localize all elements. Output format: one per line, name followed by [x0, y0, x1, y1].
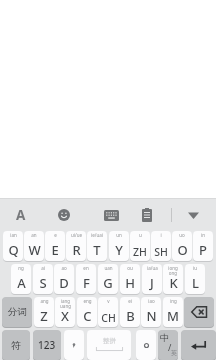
- button[interactable]: un: [109, 231, 129, 261]
- staticText: ian: [10, 232, 17, 238]
- staticText: v: [107, 298, 110, 304]
- staticText: ui/ue: [71, 232, 82, 238]
- button[interactable]: 符: [2, 330, 30, 360]
- button[interactable]: iong ong: [163, 264, 183, 294]
- staticText: ng: [18, 265, 24, 271]
- button[interactable]: ng: [11, 264, 31, 294]
- button[interactable]: [64, 330, 84, 360]
- staticText: J: [150, 274, 154, 292]
- staticText: H: [125, 274, 135, 292]
- staticText: D: [59, 274, 69, 292]
- staticText: A: [17, 274, 26, 292]
- staticText: CH: [101, 311, 116, 325]
- button[interactable]: ui/ue: [66, 231, 86, 261]
- staticText: O: [177, 241, 188, 259]
- staticText: uo: [179, 232, 185, 238]
- staticText: B: [126, 307, 135, 325]
- staticText: P: [199, 241, 207, 259]
- staticText: iong ong: [168, 265, 178, 276]
- button[interactable]: uan: [98, 264, 118, 294]
- staticText: C: [83, 307, 92, 325]
- button[interactable]: iang uang: [55, 297, 75, 327]
- button[interactable]: [138, 199, 156, 231]
- staticText: Y: [115, 241, 123, 259]
- staticText: in: [201, 232, 205, 238]
- button[interactable]: ai: [33, 264, 53, 294]
- button[interactable]: [184, 297, 214, 327]
- button[interactable]: e: [45, 231, 65, 261]
- staticText: N: [146, 307, 157, 325]
- button[interactable]: en: [76, 264, 96, 294]
- staticText: E: [51, 241, 59, 259]
- staticText: ao: [61, 265, 67, 271]
- button[interactable]: ang: [34, 297, 54, 327]
- button[interactable]: 整拼: [87, 330, 131, 360]
- button[interactable]: ia/ua: [142, 264, 162, 294]
- staticText: ou: [127, 265, 133, 271]
- staticText: ie/uai: [91, 232, 103, 238]
- button[interactable]: ing: [163, 297, 183, 327]
- staticText: T: [93, 241, 101, 259]
- staticText: K: [169, 274, 178, 292]
- staticText: S: [39, 274, 47, 292]
- button[interactable]: iao: [141, 297, 161, 327]
- staticText: iao: [148, 298, 155, 304]
- staticText: R: [72, 241, 81, 259]
- staticText: eng: [83, 298, 92, 304]
- button[interactable]: ie/uai: [87, 231, 107, 261]
- button[interactable]: [136, 330, 156, 360]
- staticText: ia/ua: [147, 265, 158, 271]
- button[interactable]: A: [12, 199, 30, 231]
- staticText: 分词: [8, 306, 27, 318]
- staticText: /: [168, 341, 172, 353]
- staticText: G: [103, 274, 113, 292]
- button[interactable]: [181, 330, 216, 360]
- button[interactable]: in: [193, 231, 213, 261]
- staticText: e: [54, 232, 57, 238]
- staticText: Q: [8, 241, 19, 259]
- staticText: W: [28, 241, 41, 259]
- staticText: Z: [40, 307, 48, 325]
- staticText: iang uang: [60, 298, 71, 309]
- staticText: X: [61, 307, 69, 325]
- staticText: 符: [11, 339, 21, 352]
- button[interactable]: ei: [120, 297, 140, 327]
- staticText: SH: [154, 245, 168, 259]
- button[interactable]: 123: [33, 330, 61, 360]
- staticText: L: [192, 274, 199, 292]
- staticText: un: [116, 232, 122, 238]
- button[interactable]: 分词: [2, 297, 32, 327]
- staticText: ei: [128, 298, 132, 304]
- button[interactable]: ian: [3, 231, 23, 261]
- staticText: M: [167, 307, 179, 325]
- staticText: 123: [38, 338, 56, 352]
- button[interactable]: i: [151, 231, 171, 261]
- staticText: iu: [193, 265, 197, 271]
- button[interactable]: 中: [158, 330, 178, 360]
- staticText: u: [139, 232, 142, 238]
- button[interactable]: eng: [77, 297, 97, 327]
- staticText: ing: [170, 298, 177, 304]
- button[interactable]: v: [98, 297, 118, 327]
- staticText: 中: [160, 332, 169, 343]
- button[interactable]: an: [24, 231, 44, 261]
- button[interactable]: [184, 199, 202, 231]
- button[interactable]: iu: [185, 264, 205, 294]
- staticText: A: [16, 206, 26, 224]
- staticText: 整拼: [103, 337, 116, 345]
- staticText: ai: [41, 265, 45, 271]
- button[interactable]: uo: [172, 231, 192, 261]
- staticText: an: [31, 232, 37, 238]
- button[interactable]: ou: [120, 264, 140, 294]
- staticText: 英: [171, 349, 177, 357]
- staticText: F: [83, 274, 90, 292]
- staticText: ZH: [133, 245, 147, 259]
- staticText: ang: [40, 298, 49, 304]
- staticText: uan: [104, 265, 113, 271]
- button[interactable]: ao: [54, 264, 74, 294]
- staticText: i: [160, 232, 162, 238]
- button[interactable]: [102, 199, 120, 231]
- staticText: en: [83, 265, 89, 271]
- button[interactable]: u: [130, 231, 150, 261]
- button[interactable]: [55, 199, 73, 231]
